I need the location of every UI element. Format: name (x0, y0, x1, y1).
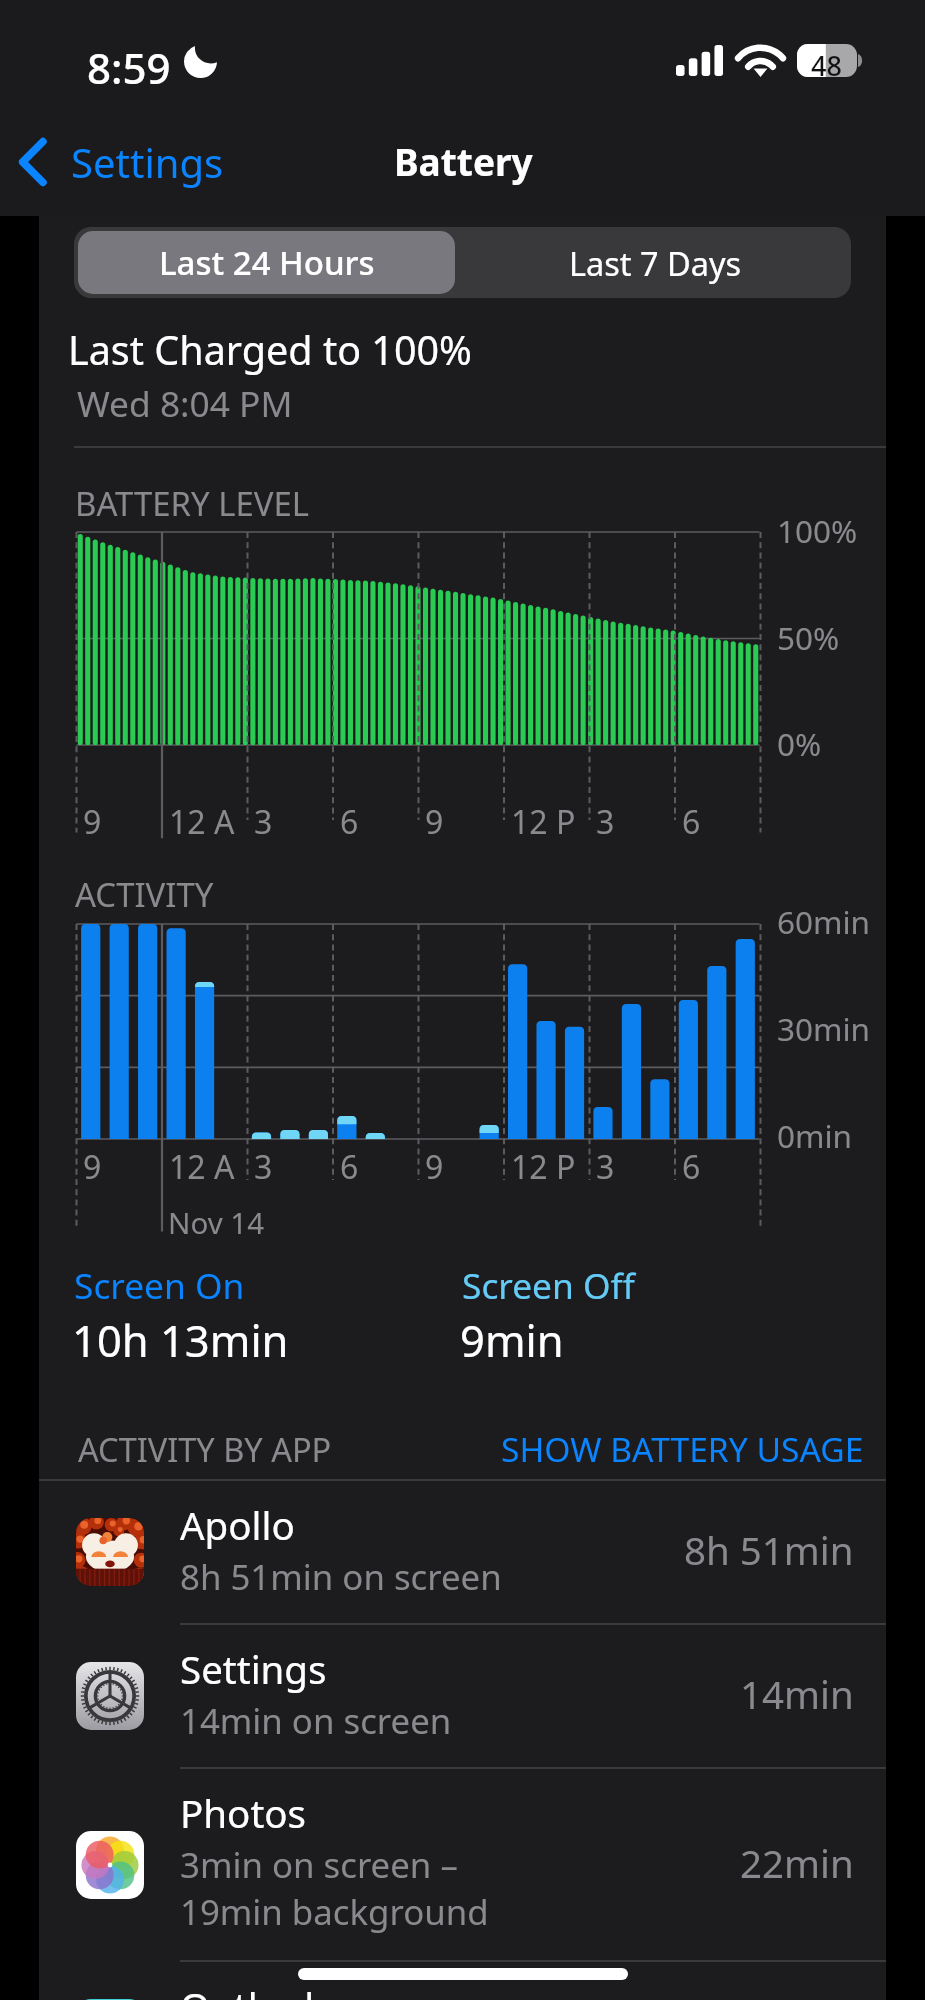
staticText: Screen On (74, 1261, 245, 1309)
staticText: 0min (777, 1114, 853, 1157)
staticText: 60min (777, 900, 871, 943)
staticText: ACTIVITY (75, 872, 214, 917)
staticText: 10h 13min (72, 1310, 289, 1369)
button[interactable]: Last 7 Days (459, 227, 851, 298)
staticText: 100% (777, 509, 858, 552)
staticText: ACTIVITY BY APP (78, 1427, 332, 1471)
staticText: 14min (740, 1668, 854, 1720)
staticText: 8:59 (87, 39, 171, 96)
staticText: 6 (682, 1145, 701, 1189)
staticText: 30min (777, 1007, 871, 1050)
staticText: 9 (425, 800, 444, 844)
staticText: 6 (340, 800, 359, 844)
staticText: 3 (254, 800, 273, 844)
staticText: 8h 51min on screen (180, 1553, 502, 1600)
button[interactable]: Settings (39, 1624, 886, 1768)
staticText: 9 (83, 800, 102, 844)
staticText: 12 A (169, 800, 235, 844)
button[interactable]: Outlook (39, 1961, 886, 2000)
staticText: SHOW BATTERY USAGE (501, 1426, 864, 1472)
staticText: 9 (83, 1145, 102, 1189)
staticText: BATTERY LEVEL (75, 481, 310, 526)
staticText: Wed 8:04 PM (77, 379, 293, 427)
staticText: 3min on screen – (180, 1841, 458, 1888)
staticText: 6 (340, 1145, 359, 1189)
staticText: 19min background (180, 1888, 489, 1935)
staticText: Screen Off (462, 1261, 635, 1309)
staticText: Last 7 Days (569, 241, 742, 285)
staticText: 12 P (511, 800, 576, 844)
staticText: 9 (425, 1145, 444, 1189)
button[interactable]: SHOW BATTERY USAGE (501, 1426, 864, 1472)
staticText: 14min on screen (180, 1697, 452, 1744)
staticText: 12 A (169, 1145, 235, 1189)
staticText: 22min (740, 1837, 854, 1889)
button[interactable]: Settings (0, 124, 240, 200)
staticText: Last 24 Hours (159, 240, 375, 285)
staticText: Outlook (180, 1980, 325, 2000)
staticText: 0% (777, 722, 822, 765)
staticText: 48 (811, 47, 842, 80)
staticText: 6 (682, 800, 701, 844)
staticText: Last Charged to 100% (68, 323, 472, 377)
staticText: Photos (180, 1787, 307, 1839)
staticText: 3 (596, 800, 615, 844)
button[interactable]: Last 24 Hours (78, 231, 455, 294)
button[interactable]: Photos (39, 1768, 886, 1961)
staticText: Battery (394, 136, 533, 186)
staticText: Settings (180, 1643, 327, 1695)
staticText: Apollo (180, 1499, 295, 1551)
staticText: Settings (71, 135, 224, 189)
staticText: 9min (460, 1310, 564, 1369)
staticText: 8h 51min (684, 1524, 854, 1576)
staticText: 3 (596, 1145, 615, 1189)
staticText: 3 (254, 1145, 273, 1189)
button[interactable]: Apollo (39, 1480, 886, 1624)
staticText: 12 P (511, 1145, 576, 1189)
staticText: Nov 14 (168, 1202, 265, 1242)
staticText: 50% (777, 616, 840, 659)
